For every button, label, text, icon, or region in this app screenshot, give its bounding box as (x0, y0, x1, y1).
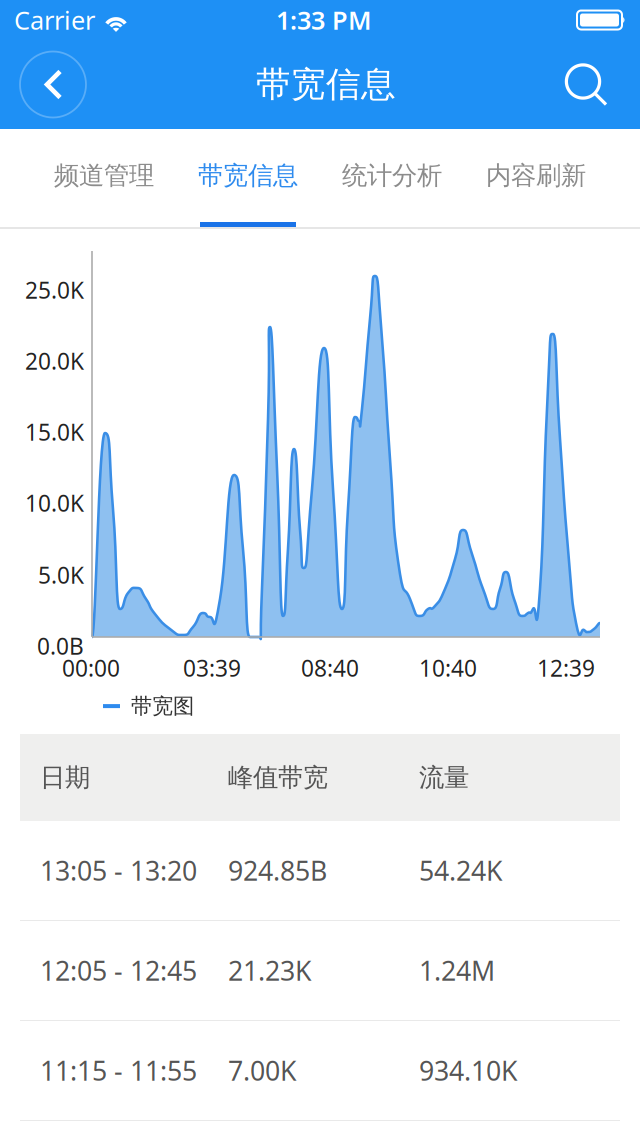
staticText: 21.23K (228, 953, 312, 988)
staticText: 0.0B (37, 631, 84, 661)
staticText: 10.0K (25, 488, 84, 518)
staticText: 1:33 PM (276, 3, 372, 37)
button[interactable]: 带宽信息 (176, 129, 320, 227)
staticText: 25.0K (25, 275, 84, 305)
staticText: 7.00K (228, 1053, 297, 1088)
staticText: 带宽信息 (256, 63, 396, 106)
staticText: 带宽图 (131, 693, 194, 719)
staticText: 峰值带宽 (228, 762, 328, 793)
staticText: 08:40 (301, 653, 359, 683)
button[interactable]: Search (563, 61, 609, 107)
staticText: 13:05 - 13:20 (40, 853, 197, 888)
staticText: 内容刷新 (486, 160, 586, 191)
button[interactable]: Back (17, 48, 89, 120)
staticText: 12:05 - 12:45 (40, 953, 197, 988)
staticText: 20.0K (25, 346, 84, 376)
staticText: 统计分析 (342, 160, 442, 191)
staticText: 00:00 (62, 653, 120, 683)
staticText: 934.10K (419, 1053, 518, 1088)
staticText: 频道管理 (54, 160, 154, 191)
staticText: 日期 (40, 762, 90, 793)
staticText: 924.85B (228, 853, 327, 888)
button[interactable]: 统计分析 (320, 129, 464, 227)
button[interactable]: 12:05 - 12:45 (0, 921, 640, 1021)
staticText: Carrier (14, 3, 95, 37)
staticText: 03:39 (183, 653, 241, 683)
button[interactable]: 内容刷新 (464, 129, 608, 227)
button[interactable]: 13:05 - 13:20 (0, 821, 640, 921)
staticText: 5.0K (38, 560, 84, 590)
staticText: 11:15 - 11:55 (40, 1053, 197, 1088)
staticText: 流量 (419, 762, 469, 793)
staticText: 54.24K (419, 853, 503, 888)
staticText: 10:40 (419, 653, 477, 683)
button[interactable]: 11:15 - 11:55 (0, 1021, 640, 1121)
staticText: 带宽信息 (198, 160, 298, 191)
button[interactable]: 频道管理 (32, 129, 176, 227)
staticText: 1.24M (419, 953, 495, 988)
staticText: 12:39 (537, 653, 595, 683)
staticText: 15.0K (25, 417, 84, 447)
